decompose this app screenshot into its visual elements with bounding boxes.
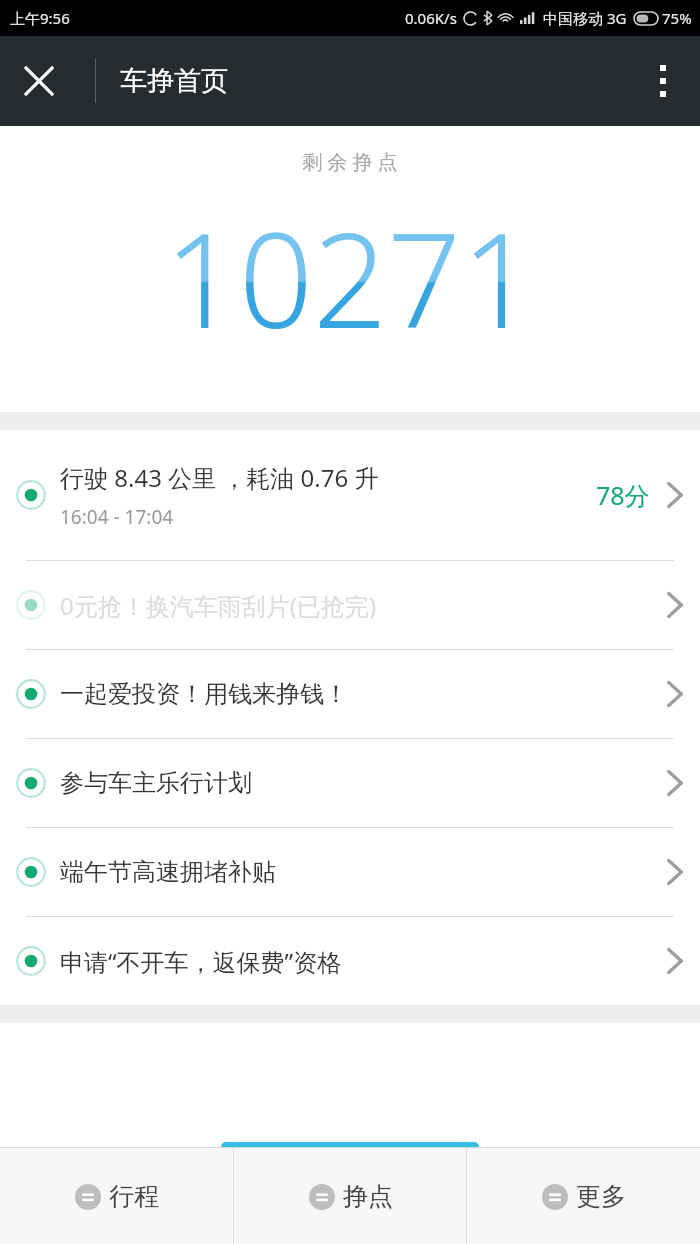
staticText: 0元抢！换汽车雨刮片(已抢完) bbox=[60, 589, 377, 622]
staticText: 78分 bbox=[596, 478, 650, 512]
staticText: 0.06K/s bbox=[405, 8, 457, 28]
button[interactable]: 一起爱投资！用钱来挣钱！ bbox=[0, 650, 700, 738]
staticText: 申请“不开车，返保费”资格 bbox=[60, 945, 342, 978]
button[interactable]: 0元抢！换汽车雨刮片(已抢完) bbox=[0, 561, 700, 649]
button[interactable]: 更多 bbox=[467, 1148, 700, 1244]
staticText: 参与车主乐行计划 bbox=[60, 768, 252, 798]
staticText: 行驶 8.43 公里 ，耗油 0.76 升 bbox=[60, 461, 379, 494]
button[interactable]: 行驶 8.43 公里 ，耗油 0.76 升 bbox=[0, 430, 700, 560]
staticText: 一起爱投资！用钱来挣钱！ bbox=[60, 679, 348, 709]
staticText: 挣点 bbox=[343, 1181, 393, 1212]
button[interactable]: 端午节高速拥堵补贴 bbox=[0, 828, 700, 916]
button[interactable]: 行程 bbox=[0, 1148, 234, 1244]
staticText: 上午9:56 bbox=[10, 8, 70, 28]
button[interactable]: 申请“不开车，返保费”资格 bbox=[0, 917, 700, 1005]
staticText: 车挣首页 bbox=[120, 64, 228, 98]
staticText: 中国移动 3G bbox=[543, 8, 627, 28]
button[interactable]: Close bbox=[8, 50, 70, 112]
staticText: 10271 bbox=[164, 189, 536, 366]
staticText: 16:04 - 17:04 bbox=[60, 504, 174, 530]
button[interactable]: 参与车主乐行计划 bbox=[0, 739, 700, 827]
staticText: 行程 bbox=[109, 1181, 159, 1212]
button[interactable]: 挣点 bbox=[234, 1148, 467, 1244]
staticText: 更多 bbox=[576, 1181, 626, 1212]
button[interactable]: More options bbox=[634, 52, 692, 110]
staticText: 剩 余 挣 点 bbox=[302, 148, 398, 175]
staticText: 端午节高速拥堵补贴 bbox=[60, 857, 276, 887]
staticText: 75% bbox=[662, 8, 692, 28]
